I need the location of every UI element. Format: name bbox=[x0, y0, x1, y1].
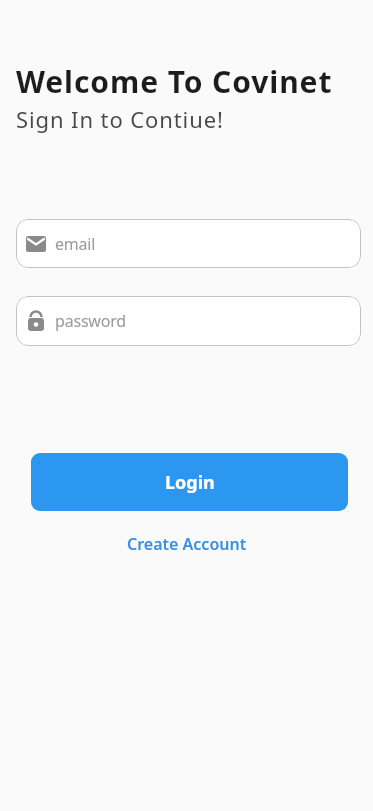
staticText: Sign In to Contiue! bbox=[16, 104, 224, 134]
button[interactable]: email bbox=[16, 219, 361, 268]
staticText: Welcome To Covinet bbox=[16, 61, 333, 102]
staticText: email bbox=[55, 233, 96, 255]
staticText: Login bbox=[165, 470, 215, 495]
staticText: password bbox=[55, 310, 126, 332]
button[interactable]: Login bbox=[31, 453, 348, 511]
button[interactable]: Create Account bbox=[127, 533, 247, 555]
button[interactable]: password bbox=[16, 296, 361, 346]
